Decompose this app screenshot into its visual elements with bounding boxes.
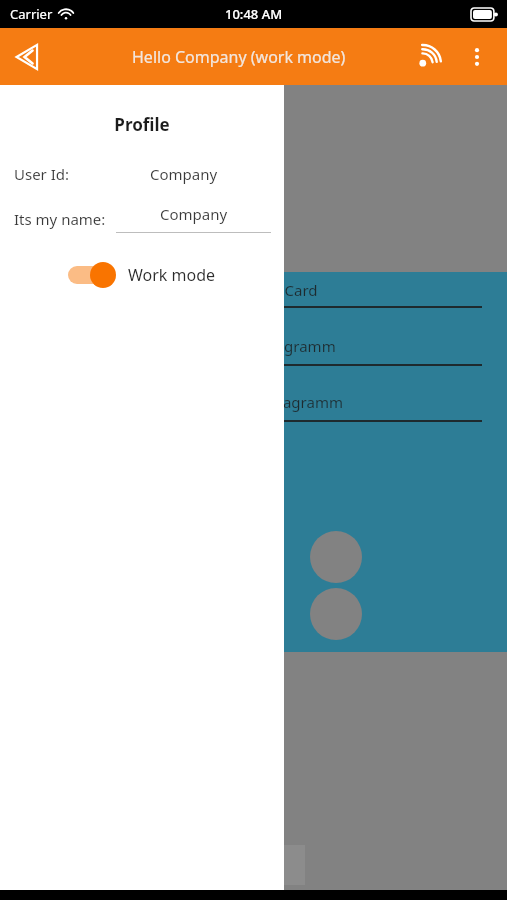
- staticText: Company: [150, 164, 218, 184]
- button[interactable]: Broadcast: [409, 37, 449, 77]
- staticText: Company: [160, 204, 228, 224]
- staticText: Telegramm: [256, 336, 336, 356]
- staticText: Profile: [0, 113, 284, 136]
- staticText: 10:48 AM: [225, 5, 283, 23]
- button[interactable]: Back: [8, 35, 52, 79]
- staticText: Instagramm: [256, 392, 343, 412]
- button[interactable]: Instagramm: [204, 386, 482, 428]
- staticText: Work mode: [128, 264, 216, 286]
- staticText: Carrier: [10, 5, 53, 23]
- staticText: User Id:: [14, 164, 70, 184]
- staticText: Its my name:: [14, 209, 106, 229]
- button[interactable]: D: [255, 845, 305, 885]
- button[interactable]: Telegramm: [204, 330, 482, 372]
- button[interactable]: Work mode: [68, 261, 216, 289]
- button[interactable]: More options: [457, 37, 497, 77]
- staticText: Card: [190, 280, 412, 300]
- button[interactable]: Company: [116, 204, 271, 233]
- staticText: Hello Company (work mode): [132, 46, 346, 68]
